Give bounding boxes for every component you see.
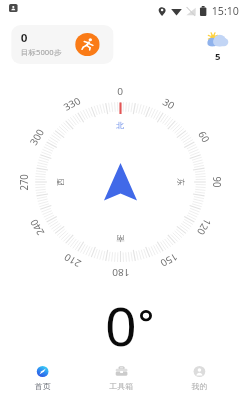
button[interactable]: Weather <box>202 33 233 62</box>
staticText: 0 <box>21 30 28 45</box>
staticText: 0 <box>105 290 137 361</box>
button[interactable]: 0 <box>11 25 114 64</box>
staticText: 工具箱 <box>109 382 134 391</box>
staticText: 15:10 <box>212 4 239 18</box>
button[interactable]: 首页 <box>5 358 79 398</box>
staticText: 我的 <box>191 382 207 391</box>
button[interactable]: 我的 <box>162 358 236 398</box>
button[interactable]: 工具箱 <box>84 358 158 398</box>
staticText: 首页 <box>35 382 51 391</box>
staticText: 5 <box>215 50 221 62</box>
staticText: 目标5000步 <box>21 47 62 57</box>
